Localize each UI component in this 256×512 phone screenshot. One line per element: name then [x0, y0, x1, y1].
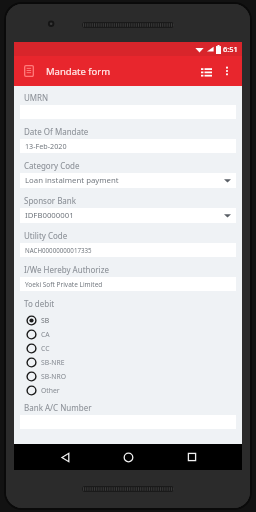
staticText: I/We Hereby Authorize [24, 264, 109, 275]
button[interactable]: Back [52, 444, 78, 470]
staticText: To debit [24, 298, 55, 309]
staticText: Sponsor Bank [24, 195, 77, 206]
staticText: SB-NRO [41, 372, 67, 381]
staticText: 6:51 [223, 44, 238, 54]
staticText: SB [41, 316, 50, 325]
button[interactable]: List view [196, 61, 216, 81]
staticText: Mandate form [46, 65, 111, 78]
button[interactable]: SB-NRO [20, 369, 236, 383]
staticText: NACH00000000017335 [25, 246, 92, 254]
staticText: Bank A/C Number [24, 402, 92, 413]
button[interactable]: SB [20, 313, 236, 327]
staticText: Category Code [24, 160, 80, 171]
button[interactable]: Loan instalment payment [20, 173, 236, 188]
staticText: CA [41, 330, 50, 339]
staticText: SB-NRE [41, 358, 65, 367]
staticText: CC [41, 344, 50, 353]
button[interactable]: SB-NRE [20, 355, 236, 369]
staticText: IDFB0000001 [25, 210, 74, 221]
staticText: Utility Code [24, 230, 68, 241]
button[interactable]: IDFB0000001 [20, 208, 236, 223]
button[interactable]: NACH00000000017335 [20, 243, 236, 257]
button[interactable]: Other [20, 383, 236, 397]
staticText: Other [41, 386, 60, 395]
staticText: 13-Feb-2020 [25, 141, 67, 151]
staticText: Date Of Mandate [24, 126, 89, 137]
button[interactable]: Home [115, 444, 141, 470]
staticText: UMRN [24, 92, 49, 103]
button[interactable]: Recents [179, 444, 205, 470]
button[interactable]: CC [20, 341, 236, 355]
button[interactable]: Yoeki Soft Private Limited [20, 277, 236, 291]
staticText: Loan instalment payment [25, 175, 119, 186]
button[interactable]: App icon [20, 62, 38, 80]
staticText: Yoeki Soft Private Limited [25, 280, 103, 289]
button[interactable]: More options [218, 62, 236, 80]
button[interactable]: 13-Feb-2020 [20, 139, 236, 153]
button[interactable]: CA [20, 327, 236, 341]
